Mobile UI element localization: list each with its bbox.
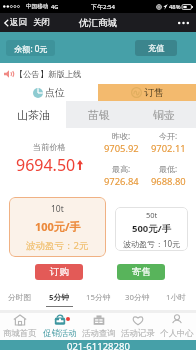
button[interactable]: 促销活动 <box>40 313 79 340</box>
staticText: 波动盈亏：10元 <box>123 238 181 249</box>
staticText: 9726.84 <box>104 175 139 188</box>
button[interactable]: 苗银 <box>66 101 131 128</box>
staticText: 活动查询 <box>82 328 116 339</box>
staticText: 今开: <box>159 130 178 141</box>
staticText: 分时图 <box>8 292 32 302</box>
staticText: 铜壶 <box>153 108 175 122</box>
button[interactable]: 10t <box>9 197 106 257</box>
staticText: 中国移动 <box>26 3 49 10</box>
staticText: 个人中心 <box>160 328 194 339</box>
staticText: 山茶油 <box>17 108 50 122</box>
staticText: 波动盈亏：2元 <box>26 239 89 252</box>
button[interactable]: 订购 <box>35 264 83 280</box>
staticText: 500元/手 <box>132 222 172 235</box>
button[interactable]: 关闭 <box>31 15 52 30</box>
staticText: 9694.50 <box>16 154 76 176</box>
button[interactable]: 点位 <box>0 84 98 101</box>
staticText: 活动记录 <box>121 328 155 339</box>
staticText: 商城首页 <box>3 328 37 339</box>
button[interactable]: 分时图 <box>0 288 40 310</box>
button[interactable]: 充值 <box>135 40 177 56</box>
button[interactable]: 铜壶 <box>131 101 196 128</box>
staticText: 最低: <box>159 163 178 174</box>
staticText: 寄售 <box>132 266 151 278</box>
staticText: 48% <box>169 3 181 11</box>
staticText: 10t <box>51 203 64 215</box>
button[interactable]: 30分钟 <box>118 288 157 310</box>
button[interactable]: 活动记录 <box>118 313 157 340</box>
staticText: 50t <box>146 210 158 220</box>
button[interactable]: 1小时 <box>157 288 196 310</box>
staticText: 【公告】新版上线 <box>15 69 82 79</box>
button[interactable]: 个人中心 <box>157 313 196 340</box>
button[interactable]: 50t <box>115 207 188 251</box>
staticText: 优汇商城 <box>79 17 117 29</box>
staticText: 4G <box>51 3 59 11</box>
staticText: 100元/手 <box>35 219 81 234</box>
staticText: 15分钟 <box>86 292 111 303</box>
staticText: 余额: 0元 <box>14 43 48 54</box>
staticText: 30分钟 <box>125 292 150 303</box>
staticText: 当前价格 <box>33 142 66 152</box>
button[interactable]: 5分钟 <box>40 288 79 310</box>
staticText: 下午2:54 <box>91 3 115 11</box>
staticText: 9688.80 <box>151 175 186 188</box>
button[interactable]: More options <box>174 15 192 31</box>
staticText: 9705.92 <box>104 142 139 155</box>
staticText: 5分钟 <box>49 292 70 303</box>
staticText: 点位 <box>45 86 65 99</box>
button[interactable]: 活动查询 <box>79 313 118 340</box>
button[interactable]: 寄售 <box>117 264 165 280</box>
staticText: 1小时 <box>166 292 187 303</box>
staticText: 充值 <box>148 43 165 53</box>
button[interactable]: 订售 <box>98 84 196 101</box>
button[interactable]: 余额: 0元 <box>6 40 55 56</box>
staticText: 订购 <box>50 266 69 278</box>
staticText: 最高: <box>112 163 131 174</box>
button[interactable]: 【公告】新版上线 <box>0 63 196 84</box>
staticText: 9702.11 <box>151 142 186 155</box>
button[interactable]: 商城首页 <box>0 313 40 340</box>
button[interactable]: 返回 <box>2 15 29 30</box>
staticText: 苗银 <box>88 108 110 122</box>
staticText: 促销活动 <box>43 328 77 339</box>
button[interactable]: 山茶油 <box>0 101 66 128</box>
staticText: 返回 <box>10 17 27 28</box>
staticText: 关闭 <box>33 17 50 28</box>
button[interactable]: 15分钟 <box>79 288 118 310</box>
staticText: 昨收: <box>112 130 131 141</box>
staticText: 021-61128280 <box>67 340 130 350</box>
staticText: 订售 <box>144 86 164 99</box>
